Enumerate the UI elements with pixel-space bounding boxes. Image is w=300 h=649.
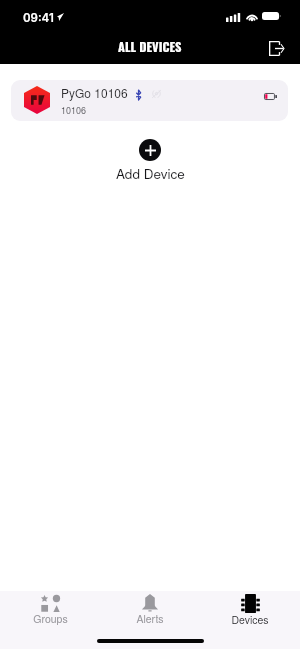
button[interactable]: Add Device [0,139,300,183]
staticText: PyGo 10106 [61,84,128,101]
button[interactable]: Groups [0,591,100,627]
staticText: 10106 [61,104,87,117]
staticText: Devices [231,612,269,627]
button[interactable]: PyGo 10106 [11,80,288,121]
staticText: ALL DEVICES [118,37,182,56]
staticText: Alerts [136,611,164,626]
button[interactable]: Devices [200,591,300,628]
button[interactable]: Alerts [100,591,200,627]
staticText: Add Device [116,164,185,183]
staticText: Groups [33,611,68,626]
button[interactable]: Log out [260,33,292,63]
staticText: 09:41 [23,11,54,25]
